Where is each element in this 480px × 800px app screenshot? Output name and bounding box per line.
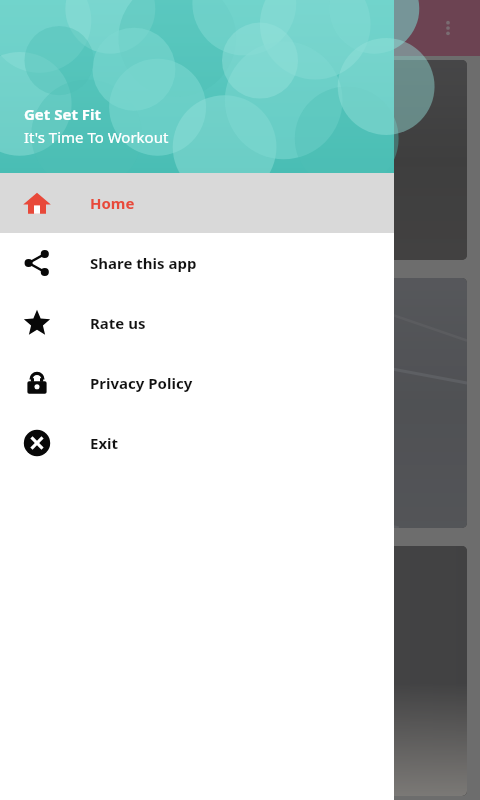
button[interactable]: Exit [0, 413, 394, 473]
button[interactable]: More options [426, 6, 470, 50]
staticText: Share this app [90, 253, 197, 273]
staticText: Exit [90, 433, 119, 453]
staticText: Rate us [90, 313, 146, 333]
button[interactable] [13, 278, 467, 528]
staticText: Get Set Fit [24, 104, 102, 124]
button[interactable]: Home [0, 173, 394, 233]
button[interactable]: Privacy Policy [0, 353, 394, 413]
button[interactable] [13, 546, 467, 796]
staticText: Home [90, 193, 135, 213]
staticText: It's Time To Workout [24, 127, 169, 147]
staticText: Privacy Policy [90, 373, 193, 393]
button[interactable]: Share this app [0, 233, 394, 293]
button[interactable] [13, 60, 467, 260]
button[interactable]: Rate us [0, 293, 394, 353]
